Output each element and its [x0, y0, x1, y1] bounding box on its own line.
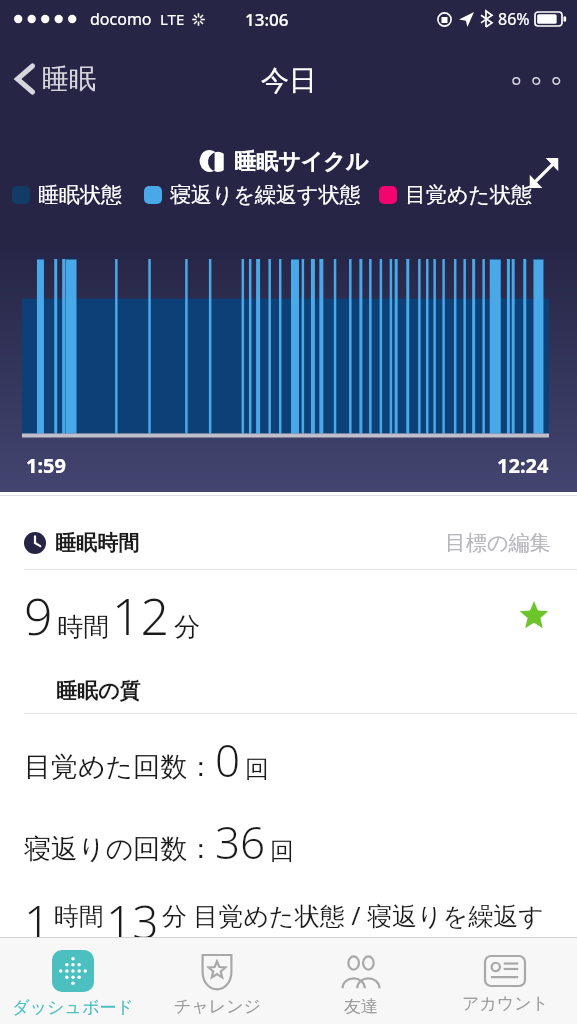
button[interactable]: チャレンジ [145, 938, 289, 1024]
staticText: 分 [174, 611, 200, 644]
staticText: 9 [24, 582, 53, 650]
button[interactable]: ダッシュボード [0, 938, 145, 1024]
staticText: 睡眠サイクル [234, 148, 369, 176]
staticText: 1:59 [26, 452, 66, 479]
staticText: 睡眠 [42, 62, 96, 96]
button[interactable]: 友達 [289, 938, 433, 1024]
staticText: LTE [160, 9, 185, 29]
staticText: 36 [215, 812, 266, 872]
staticText: 1 [24, 890, 51, 937]
staticText: 今日 [261, 63, 317, 98]
staticText: docomo [90, 8, 152, 30]
staticText: 12:24 [497, 452, 549, 479]
staticText: 時間 [54, 901, 104, 932]
staticText: 睡眠の質 [56, 678, 141, 704]
button[interactable]: More options [507, 70, 561, 92]
staticText: 寝返りの回数： [24, 832, 215, 866]
staticText: 睡眠時間 [55, 530, 139, 556]
staticText: 友達 [344, 996, 378, 1017]
button[interactable]: 目標の編集 [441, 526, 555, 560]
staticText: 目覚めた状態 [405, 182, 532, 208]
staticText: 13:06 [245, 8, 289, 31]
staticText: 分 目覚めた状態 / 寝返りを繰返す [162, 898, 544, 932]
button[interactable]: 睡眠 [10, 58, 102, 100]
button[interactable]: Expand chart [521, 150, 567, 196]
staticText: 時間 [57, 611, 109, 644]
staticText: 0 [215, 730, 241, 790]
staticText: 寝返りを繰返す状態 [170, 182, 361, 208]
staticText: ダッシュボード [12, 997, 134, 1018]
staticText: 86% [498, 8, 530, 30]
staticText: 睡眠状態 [38, 182, 122, 208]
staticText: チャレンジ [174, 996, 261, 1017]
staticText: 12 [112, 582, 170, 650]
staticText: 目覚めた回数： [24, 750, 215, 784]
button[interactable]: アカウント [433, 938, 577, 1024]
staticText: 13 [106, 890, 159, 937]
staticText: 回 [270, 836, 294, 866]
staticText: 目標の編集 [445, 530, 551, 556]
button[interactable]: Sleep cycle chart [0, 254, 577, 444]
staticText: 回 [245, 754, 269, 784]
staticText: アカウント [462, 993, 549, 1014]
